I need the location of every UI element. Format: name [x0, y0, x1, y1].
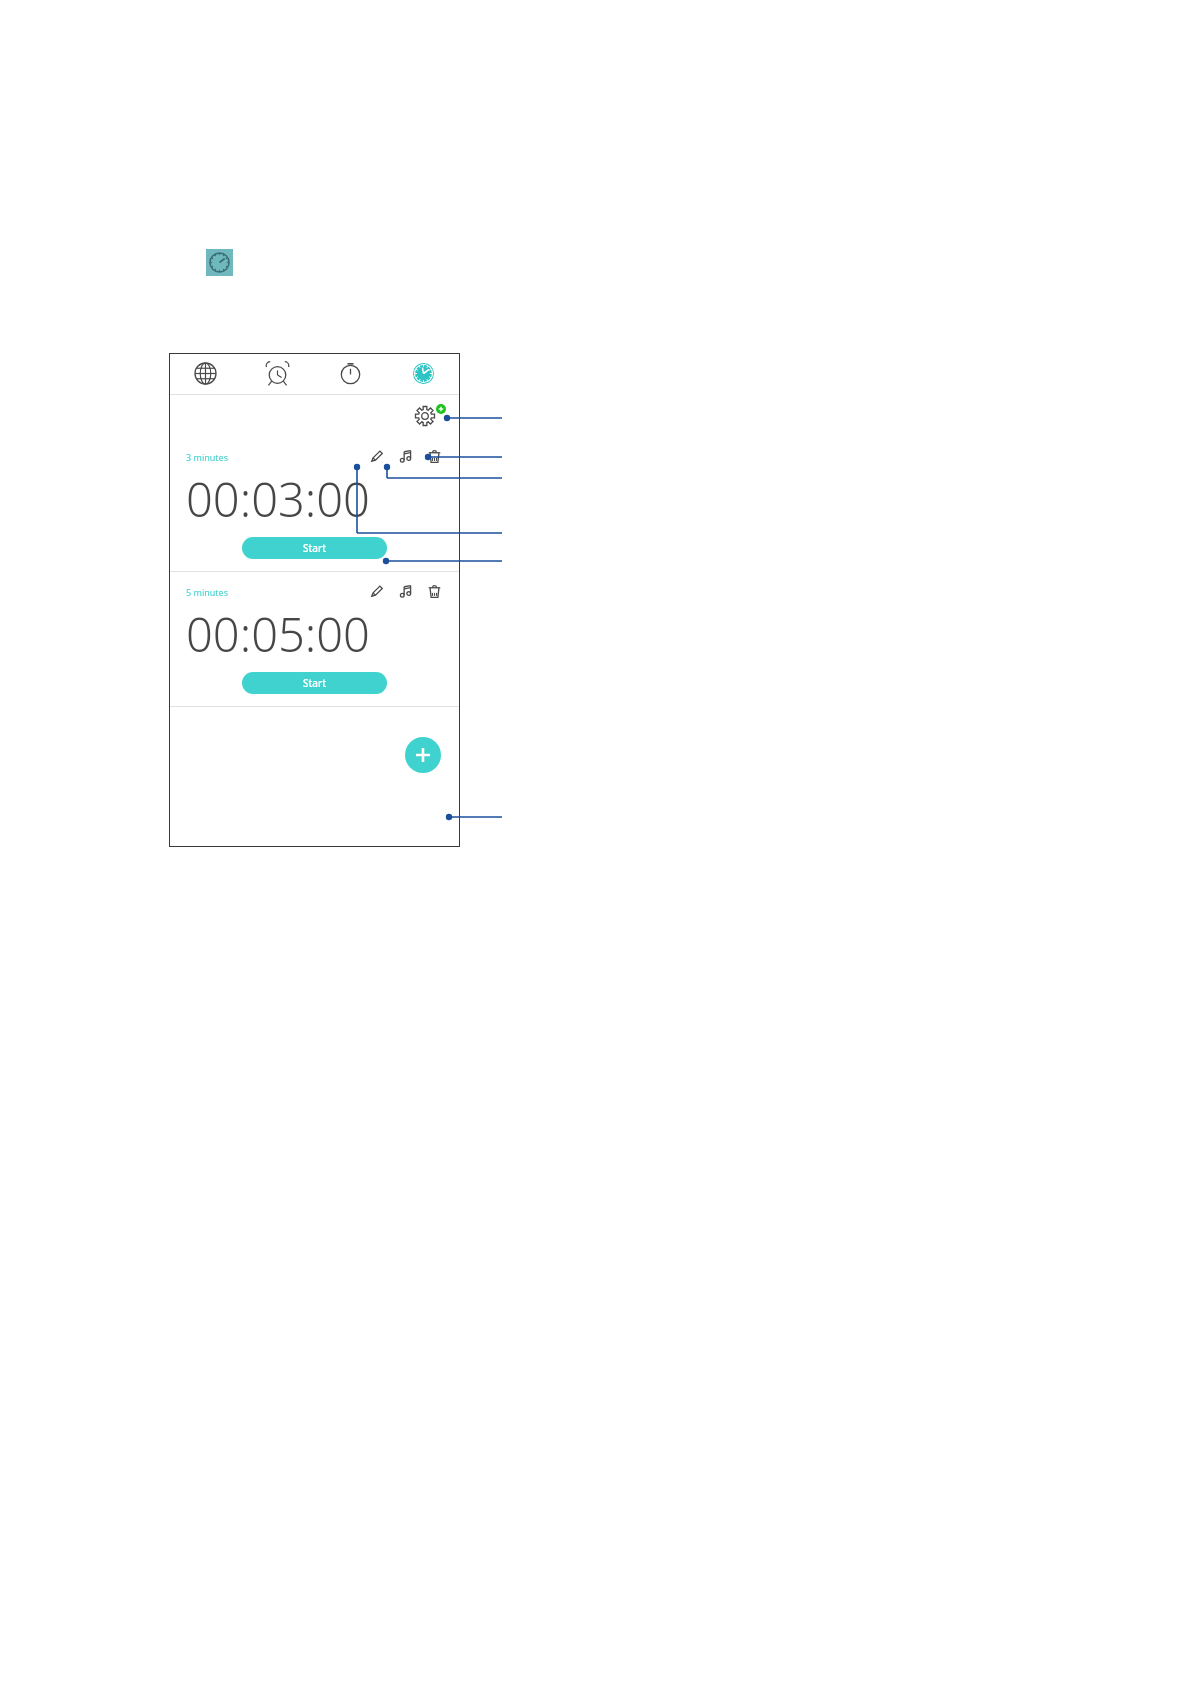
- button[interactable]: Timer app icon: [206, 249, 233, 276]
- button[interactable]: Edit: [368, 448, 385, 465]
- staticText: Start: [303, 676, 327, 690]
- staticText: Start: [303, 541, 327, 555]
- staticText: 3 minutes: [186, 451, 228, 463]
- button[interactable]: Ringtone: [397, 448, 414, 465]
- button[interactable]: Start: [242, 672, 387, 694]
- button[interactable]: Start: [242, 537, 387, 559]
- button[interactable]: Settings: [414, 405, 436, 427]
- button[interactable]: Alarm: [241, 353, 314, 394]
- button[interactable]: Ringtone: [397, 583, 414, 600]
- button[interactable]: Edit: [368, 583, 385, 600]
- button[interactable]: Timer: [387, 353, 460, 394]
- staticText: 00:03:00: [186, 467, 443, 531]
- button[interactable]: Add timer: [405, 737, 441, 773]
- button[interactable]: Delete: [426, 448, 443, 465]
- button[interactable]: Stopwatch: [314, 353, 387, 394]
- button[interactable]: Delete: [426, 583, 443, 600]
- staticText: 00:05:00: [186, 602, 443, 666]
- button[interactable]: World clock: [169, 353, 241, 394]
- staticText: 5 minutes: [186, 586, 228, 598]
